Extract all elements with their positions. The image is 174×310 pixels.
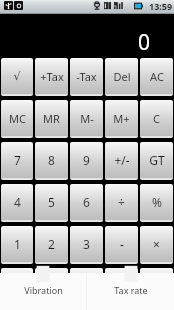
- button[interactable]: M-: [70, 100, 103, 138]
- staticText: Vibration: [24, 284, 63, 296]
- staticText: MC: [9, 111, 26, 126]
- button[interactable]: 6: [70, 184, 103, 222]
- staticText: +/-: [114, 152, 130, 168]
- other: USB connected: [4, 1, 13, 10]
- staticText: -: [120, 236, 124, 252]
- button[interactable]: Del: [105, 58, 138, 96]
- staticText: 9: [83, 152, 90, 168]
- other: App notification: [14, 1, 23, 10]
- button[interactable]: 7: [1, 142, 33, 180]
- button[interactable]: 0: [1, 268, 33, 306]
- staticText: 13:59: [149, 0, 173, 12]
- button[interactable]: 5: [35, 184, 68, 222]
- staticText: M-: [80, 111, 94, 126]
- staticText: √: [13, 70, 21, 83]
- button[interactable]: C: [140, 100, 173, 138]
- staticText: AC: [150, 69, 164, 84]
- staticText: 8: [48, 152, 55, 168]
- staticText: 3: [83, 236, 90, 252]
- button[interactable]: 9: [70, 142, 103, 180]
- button[interactable]: 00: [35, 268, 68, 306]
- button[interactable]: 2: [35, 226, 68, 264]
- staticText: ÷: [118, 194, 125, 210]
- button[interactable]: ÷: [105, 184, 138, 222]
- staticText: M+: [113, 111, 130, 126]
- button[interactable]: GT: [140, 142, 173, 180]
- staticText: GT: [149, 152, 165, 168]
- button[interactable]: -Tax: [70, 58, 103, 96]
- staticText: 4: [14, 194, 21, 210]
- button[interactable]: 1: [1, 226, 33, 264]
- button[interactable]: .: [70, 268, 103, 306]
- button[interactable]: 3: [70, 226, 103, 264]
- staticText: 1: [14, 236, 21, 252]
- button[interactable]: 8: [35, 142, 68, 180]
- staticText: 00: [45, 278, 59, 294]
- staticText: +: [118, 278, 125, 294]
- button[interactable]: M+: [105, 100, 138, 138]
- staticText: 6: [83, 194, 90, 210]
- button[interactable]: MR: [35, 100, 68, 138]
- button[interactable]: AC: [140, 58, 173, 96]
- staticText: 5: [48, 194, 55, 210]
- staticText: Tax rate: [114, 284, 148, 296]
- button[interactable]: -: [105, 226, 138, 264]
- staticText: 7: [14, 152, 21, 168]
- staticText: .: [85, 278, 89, 294]
- staticText: -Tax: [76, 69, 97, 84]
- button[interactable]: 4: [1, 184, 33, 222]
- button[interactable]: √: [1, 58, 33, 96]
- button[interactable]: ×: [140, 226, 173, 264]
- button[interactable]: MC: [1, 100, 33, 138]
- staticText: Del: [113, 69, 131, 84]
- staticText: +Tax: [40, 69, 64, 84]
- button[interactable]: +: [105, 268, 138, 306]
- staticText: %: [152, 194, 162, 210]
- staticText: ×: [153, 236, 160, 252]
- staticText: 0: [138, 28, 151, 57]
- staticText: C: [153, 111, 160, 126]
- button[interactable]: +Tax: [35, 58, 68, 96]
- staticText: MR: [43, 111, 60, 126]
- staticText: 2: [48, 236, 55, 252]
- button[interactable]: %: [140, 184, 173, 222]
- button[interactable]: +/-: [105, 142, 138, 180]
- button[interactable]: Vibration: [0, 273, 86, 310]
- button[interactable]: =: [140, 268, 173, 306]
- button[interactable]: Tax rate: [87, 273, 174, 310]
